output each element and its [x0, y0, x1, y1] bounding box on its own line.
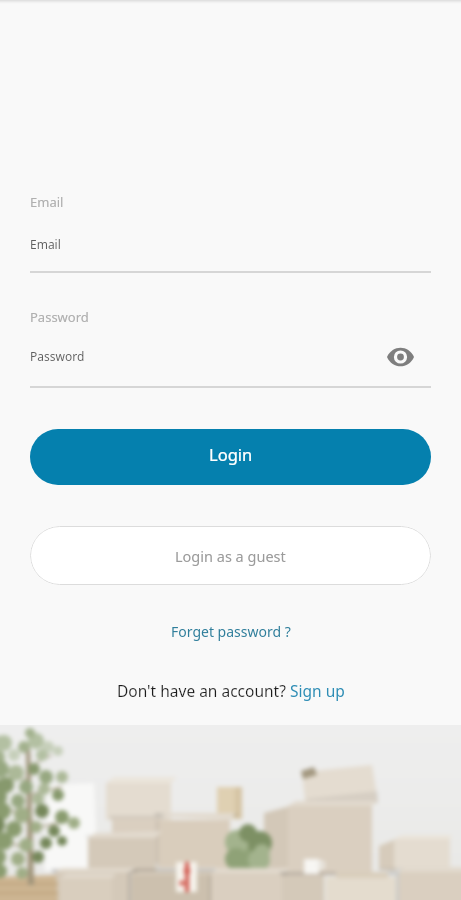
staticText: Login: [209, 443, 253, 465]
staticText: Login as a guest: [175, 546, 286, 566]
staticText: Password: [30, 308, 89, 326]
button[interactable]: Forget password ?: [150, 616, 311, 646]
button[interactable]: Login: [30, 429, 431, 485]
staticText: Forget password ?: [171, 622, 291, 641]
button[interactable]: Show password: [383, 340, 417, 374]
staticText: Password: [30, 348, 85, 364]
staticText: Don't have an account?: [117, 680, 290, 701]
button[interactable]: Sign up: [290, 680, 345, 701]
staticText: Email: [30, 236, 61, 252]
button[interactable]: Password: [30, 303, 431, 386]
staticText: Email: [30, 193, 64, 211]
button[interactable]: Email: [30, 188, 431, 273]
staticText: Sign up: [290, 680, 345, 701]
button[interactable]: Login as a guest: [30, 526, 431, 585]
